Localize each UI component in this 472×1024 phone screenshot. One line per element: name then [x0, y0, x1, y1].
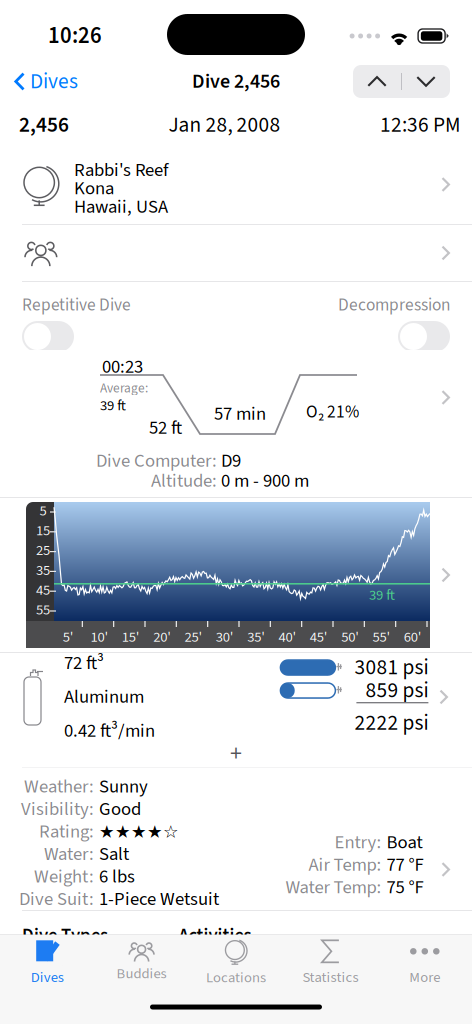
staticText: 30'	[216, 627, 234, 647]
staticText: Dives	[31, 967, 64, 988]
staticText: 50'	[341, 627, 359, 647]
staticText: 15'	[122, 627, 140, 647]
button[interactable]: Dives	[0, 60, 78, 103]
staticText: 3081 psi	[354, 653, 428, 682]
staticText: +	[230, 737, 242, 771]
button[interactable]: Statistics	[283, 935, 378, 990]
staticText: 35	[36, 560, 50, 580]
button[interactable]: 5	[0, 498, 472, 652]
staticText: 35'	[247, 627, 265, 647]
staticText: 75 °F	[386, 874, 423, 900]
staticText: 57 min	[214, 401, 266, 427]
staticText: 12:36 PM	[380, 110, 461, 140]
staticText: Kona	[74, 175, 114, 201]
staticText: 39 ft	[369, 585, 395, 605]
staticText: 25	[36, 540, 50, 561]
staticText: 5	[39, 501, 46, 521]
staticText: Jan 28, 2008	[168, 110, 280, 140]
staticText: Visibility:	[21, 796, 94, 822]
button[interactable]: Dive Types	[0, 911, 472, 951]
staticText: 15	[36, 520, 50, 541]
staticText: 1-Piece Wetsuit	[99, 886, 219, 912]
staticText: 0 m - 900 m	[221, 468, 309, 494]
button[interactable]: Rabbi's Reef	[0, 145, 472, 224]
button[interactable]: Weather:	[0, 768, 472, 910]
staticText: 39 ft	[100, 395, 126, 416]
staticText: Dive Suit:	[19, 886, 94, 912]
button[interactable]: More	[378, 935, 472, 990]
staticText: 10:26	[48, 20, 102, 52]
staticText: Dive Types	[22, 923, 108, 949]
staticText: Salt	[99, 841, 129, 867]
button[interactable]: Repetitive Dive	[22, 321, 74, 352]
staticText: Air Temp:	[308, 852, 381, 878]
staticText: Weight:	[34, 864, 94, 890]
staticText: 72 ft³	[64, 650, 104, 676]
staticText: Sunny	[99, 774, 148, 800]
staticText: Good	[99, 796, 141, 822]
staticText: Decompression	[338, 293, 450, 317]
staticText: 0.42 ft³/min	[64, 718, 155, 744]
staticText: 20'	[153, 627, 171, 647]
staticText: 859 psi	[365, 676, 428, 705]
staticText: 25'	[184, 627, 202, 647]
button[interactable]: Previous dive	[353, 65, 401, 98]
staticText: Altitude:	[151, 468, 217, 494]
staticText: 00:23	[102, 354, 143, 380]
staticText: ★★★★☆	[99, 822, 179, 842]
staticText: 5'	[63, 627, 74, 647]
staticText: Hawaii, USA	[74, 194, 168, 220]
staticText: Entry:	[334, 829, 381, 855]
staticText: 40'	[278, 627, 296, 647]
staticText: Dives	[30, 67, 78, 96]
staticText: 10'	[90, 627, 108, 647]
staticText: Dive Computer:	[96, 448, 217, 474]
button[interactable]: Dives	[0, 935, 94, 990]
staticText: 77 °F	[386, 852, 423, 878]
button[interactable]: Buddies	[94, 935, 189, 990]
staticText: Rabbi's Reef	[74, 157, 168, 183]
button[interactable]: Next dive	[402, 65, 450, 98]
staticText: Statistics	[302, 967, 358, 988]
staticText: Rating:	[39, 819, 94, 845]
staticText: Water Temp:	[285, 874, 381, 900]
staticText: Water:	[44, 841, 94, 867]
button[interactable]: 72 ft³	[0, 653, 472, 741]
staticText: 45'	[310, 627, 328, 647]
staticText: 52 ft	[149, 415, 182, 441]
staticText: Dive 2,456	[192, 68, 280, 95]
button[interactable]: 00:23	[0, 350, 472, 445]
button[interactable]: Locations	[189, 935, 283, 990]
staticText: Activities	[178, 923, 251, 949]
staticText: Repetitive Dive	[22, 293, 131, 317]
staticText: 55'	[372, 627, 390, 647]
button[interactable]: Buddies	[0, 225, 472, 281]
staticText: 45	[36, 580, 50, 600]
staticText: 55	[36, 600, 50, 620]
staticText: Aluminum	[64, 684, 144, 710]
staticText: D9	[221, 448, 241, 474]
staticText: More	[409, 967, 440, 988]
button[interactable]: Add tank	[0, 741, 472, 767]
staticText: Buddies	[117, 964, 167, 984]
staticText: Weather:	[24, 774, 94, 800]
staticText: 6 lbs	[99, 864, 135, 890]
staticText: Average:	[100, 379, 148, 397]
button[interactable]: Decompression	[398, 321, 450, 352]
staticText: Locations	[206, 968, 266, 988]
staticText: O₂ 21%	[306, 400, 359, 424]
staticText: 2222 psi	[354, 708, 428, 738]
staticText: 60'	[404, 627, 422, 647]
staticText: Boat	[386, 829, 422, 855]
staticText: 2,456	[19, 110, 69, 140]
